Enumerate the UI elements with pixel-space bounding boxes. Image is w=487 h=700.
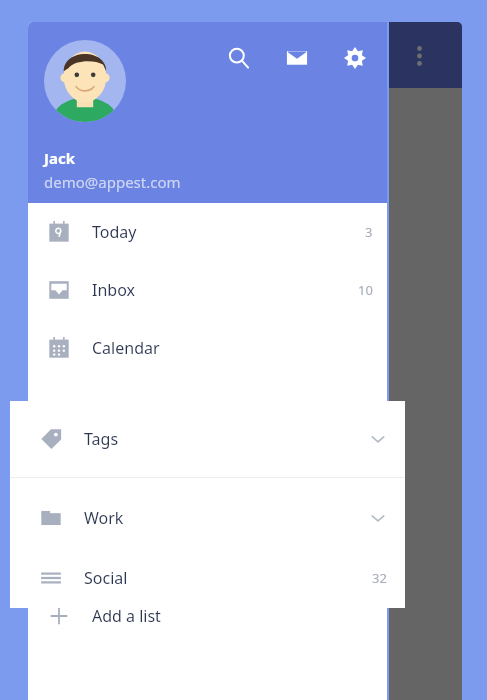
- button[interactable]: Add a list: [28, 587, 387, 645]
- staticText: Work: [84, 507, 124, 529]
- button[interactable]: Work: [10, 488, 405, 548]
- button[interactable]: Inbox: [28, 261, 387, 319]
- button[interactable]: More options: [405, 42, 433, 70]
- staticText: demo@appest.com: [44, 172, 181, 192]
- staticText: Calendar: [92, 337, 160, 359]
- staticText: 10: [358, 281, 373, 299]
- button[interactable]: Mail: [277, 38, 317, 78]
- button[interactable]: Search: [219, 38, 259, 78]
- staticText: Social: [84, 567, 128, 589]
- button[interactable]: Settings: [335, 38, 375, 78]
- button[interactable]: Tags: [10, 409, 405, 469]
- staticText: Today: [92, 221, 137, 243]
- staticText: Jack: [44, 148, 75, 168]
- button[interactable]: [44, 40, 126, 122]
- button[interactable]: Calendar: [28, 319, 387, 377]
- staticText: Add a list: [92, 605, 161, 627]
- staticText: 32: [372, 569, 387, 587]
- staticText: Tags: [84, 428, 119, 450]
- button[interactable]: Social: [10, 548, 405, 608]
- staticText: Inbox: [92, 279, 135, 301]
- staticText: 3: [365, 223, 373, 241]
- button[interactable]: Today: [28, 203, 387, 261]
